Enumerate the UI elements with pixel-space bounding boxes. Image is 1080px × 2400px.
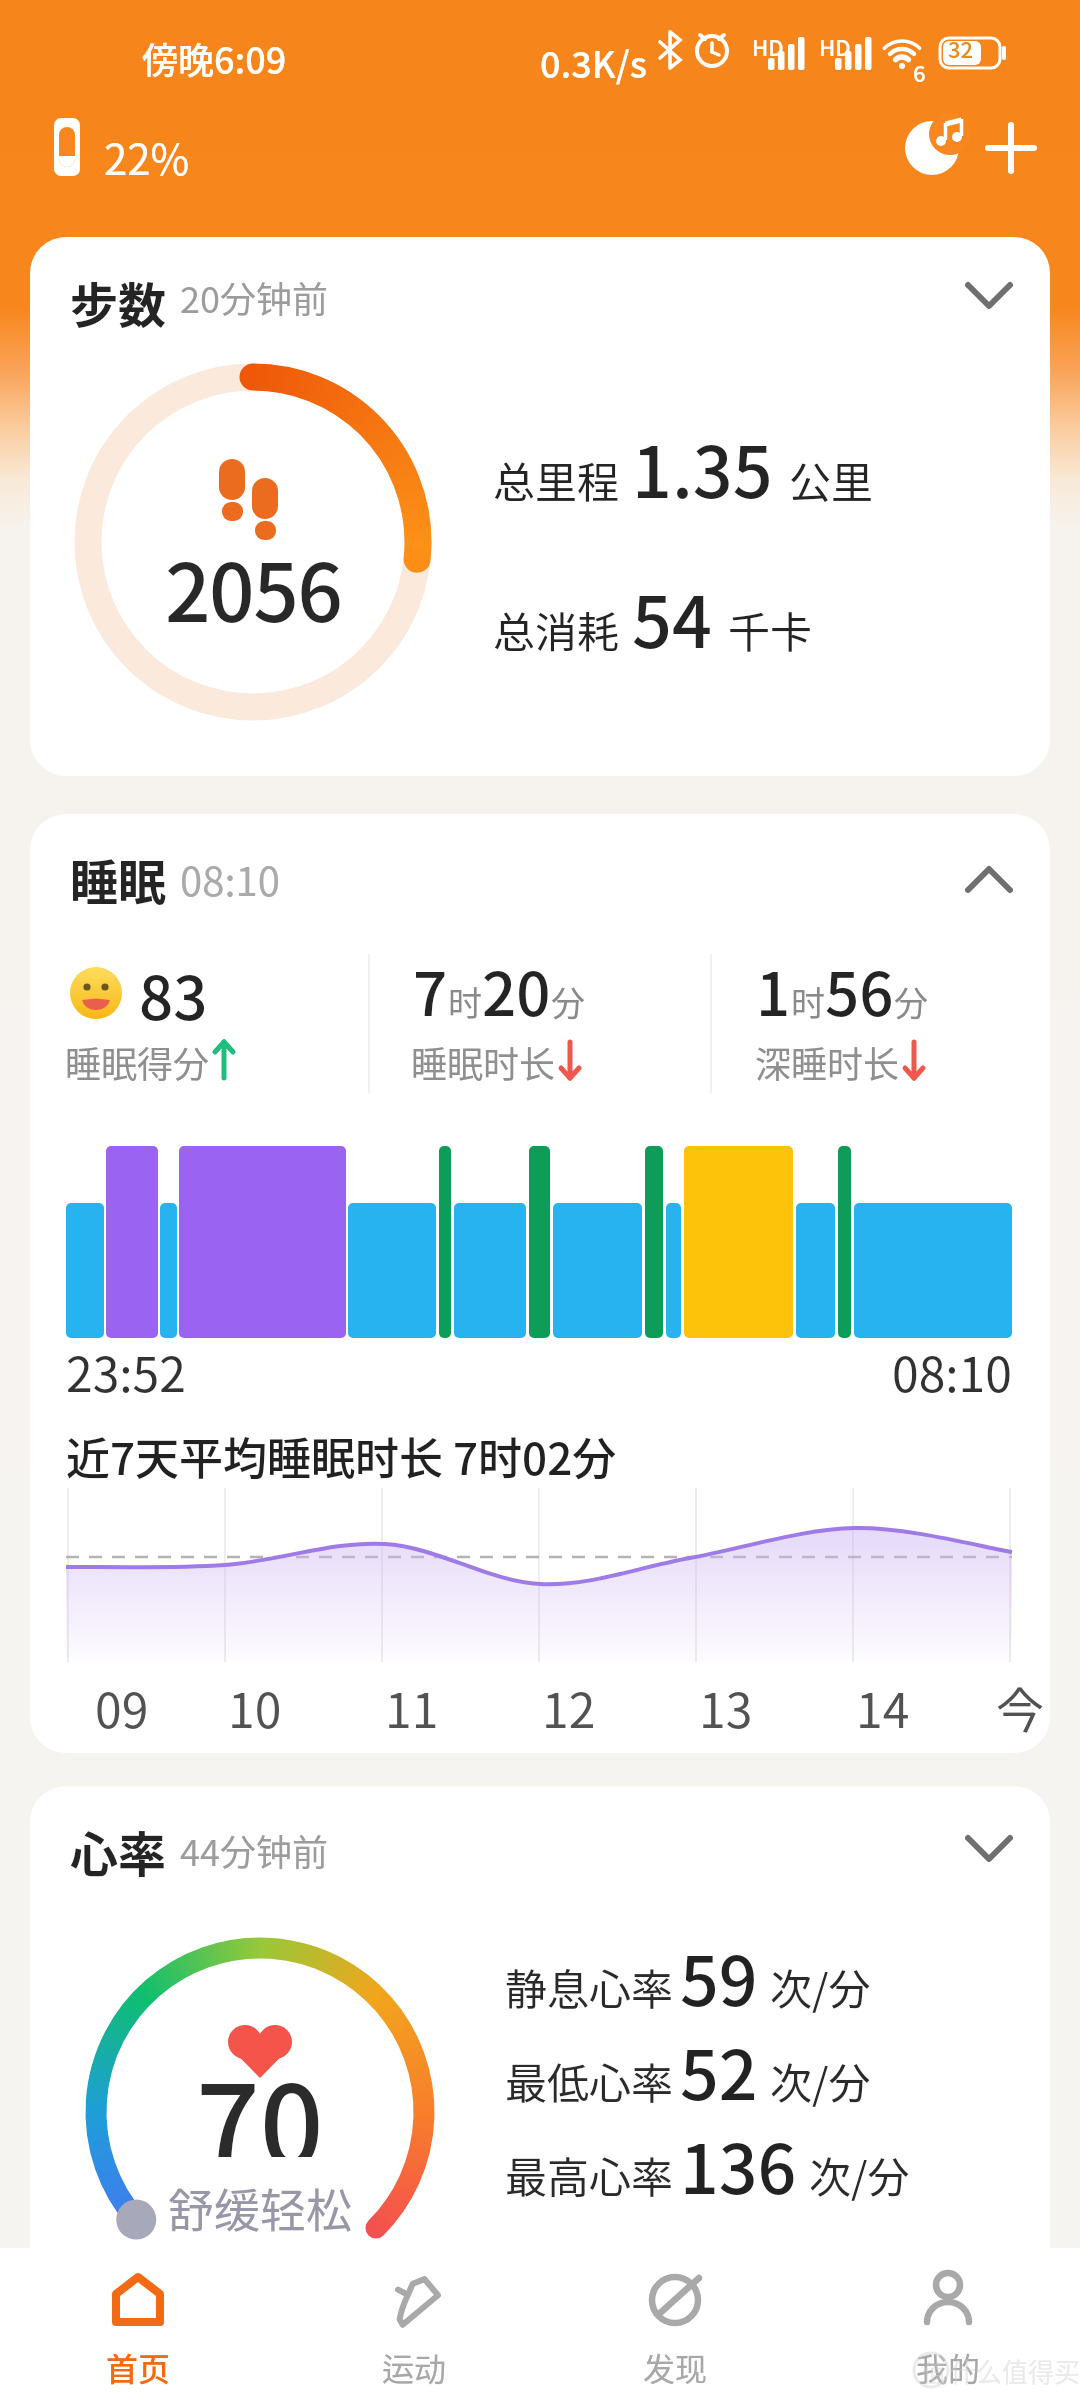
staticText: 59	[680, 1927, 758, 2025]
staticText: 睡眠时长	[411, 1036, 556, 1088]
button[interactable]: 睡眠	[30, 814, 1050, 1753]
staticText: 时	[791, 977, 825, 1026]
staticText: 睡眠	[70, 844, 167, 914]
staticText: 56	[825, 946, 894, 1033]
button[interactable]: 发现	[595, 2248, 755, 2400]
staticText: 公里	[789, 449, 874, 510]
staticText: 83	[139, 950, 208, 1037]
staticText: 12	[542, 1672, 596, 1742]
staticText: 08:10	[180, 850, 280, 908]
staticText: 次/分	[770, 2050, 871, 2111]
staticText: 分	[894, 977, 928, 1026]
staticText: 深睡时长	[755, 1036, 900, 1088]
staticText: 44分钟前	[180, 1824, 328, 1876]
staticText: 总消耗	[493, 599, 620, 660]
staticText: 最高心率	[505, 2144, 674, 2205]
staticText: 2056	[165, 529, 342, 629]
staticText: 最低心率	[505, 2050, 674, 2111]
staticText: 10	[228, 1672, 282, 1742]
staticText: 136	[680, 2115, 797, 2213]
staticText: HD	[819, 30, 851, 62]
staticText: 32	[948, 32, 974, 64]
staticText: 22%	[104, 126, 190, 187]
staticText: 舒缓轻松	[168, 2174, 352, 2234]
staticText: 7	[413, 946, 448, 1033]
staticText: 静息心率	[505, 1956, 674, 2017]
staticText: 什么值得买	[950, 2352, 1080, 2390]
staticText: 次/分	[770, 1956, 871, 2017]
staticText: 09	[95, 1672, 149, 1742]
staticText: 时	[448, 977, 482, 1026]
staticText: 今	[996, 1672, 1045, 1742]
staticText: 傍晚6:09	[142, 32, 287, 84]
button[interactable]	[54, 118, 82, 178]
button[interactable]: 首页	[58, 2248, 218, 2400]
staticText: 52	[680, 2021, 758, 2119]
staticText: 运动	[382, 2344, 447, 2390]
staticText: 54	[632, 567, 712, 668]
staticText: 6	[913, 56, 926, 88]
staticText: 首页	[106, 2344, 171, 2390]
button[interactable]	[986, 123, 1036, 173]
staticText: 睡眠得分	[65, 1036, 210, 1088]
staticText: 08:10	[892, 1336, 1012, 1406]
staticText: 1.35	[632, 417, 773, 518]
staticText: HD	[752, 30, 784, 62]
button[interactable]: 心率	[30, 1786, 1050, 2308]
staticText: 1	[756, 946, 791, 1033]
button[interactable]: 步数	[30, 237, 1050, 776]
staticText: 分	[551, 977, 585, 1026]
staticText: 近7天平均睡眠时长 7时02分	[66, 1424, 617, 1488]
button[interactable]: 运动	[334, 2248, 494, 2400]
staticText: 70	[196, 2037, 324, 2157]
staticText: 值	[922, 2354, 946, 2389]
staticText: 总里程	[493, 449, 620, 510]
staticText: 我的	[916, 2344, 981, 2390]
staticText: 次/分	[809, 2144, 910, 2205]
staticText: 13	[699, 1672, 753, 1742]
button[interactable]: 我的	[868, 2248, 1028, 2400]
button[interactable]	[903, 117, 965, 177]
staticText: 千卡	[728, 599, 813, 660]
staticText: 23:52	[66, 1336, 186, 1406]
staticText: 11	[385, 1672, 439, 1742]
staticText: 步数	[70, 267, 167, 337]
staticText: 14	[856, 1672, 910, 1742]
staticText: 20	[482, 946, 551, 1033]
staticText: 心率	[70, 1816, 167, 1886]
staticText: 20分钟前	[180, 271, 328, 323]
staticText: 发现	[643, 2344, 708, 2390]
staticText: 0.3K/s	[540, 36, 647, 88]
